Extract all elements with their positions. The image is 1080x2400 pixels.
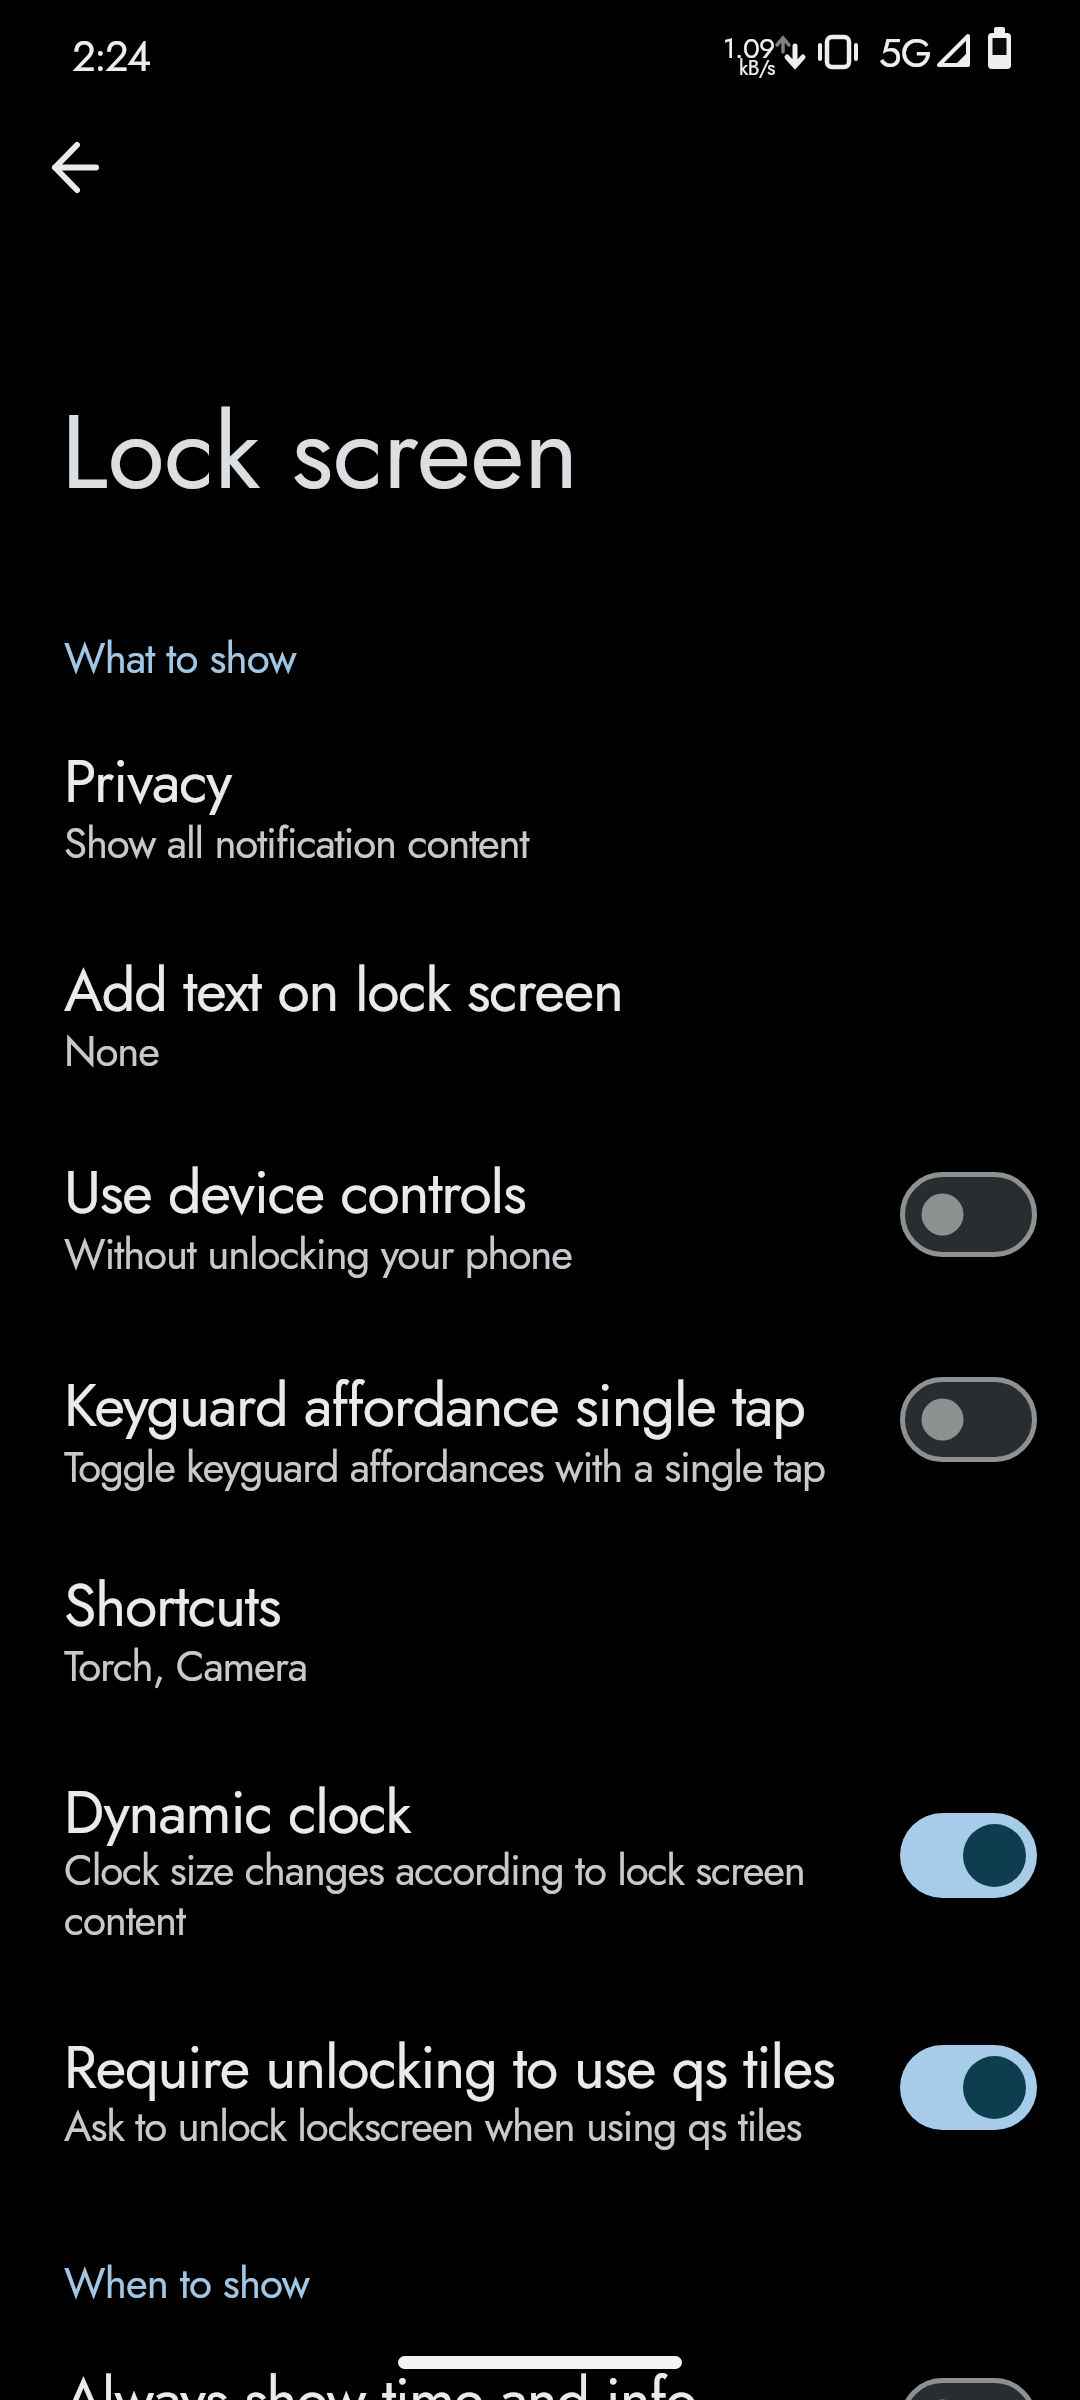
staticText: Dynamic clock	[64, 1770, 411, 1855]
staticText: Show all notification content	[64, 813, 529, 874]
button[interactable]: Require unlocking to use qs tiles	[0, 2002, 1080, 2182]
staticText: Keyguard affordance single tap	[64, 1363, 805, 1448]
staticText: Without unlocking your phone	[64, 1224, 572, 1285]
button[interactable]: Add text on lock screen	[0, 925, 1080, 1105]
staticText: kB/s	[739, 53, 776, 83]
button[interactable]: Privacy	[0, 716, 1080, 896]
staticText: Toggle keyguard affordances with a singl…	[64, 1437, 825, 1498]
staticText: 1.09	[723, 28, 775, 68]
staticText: Shortcuts	[64, 1563, 281, 1648]
button[interactable]	[900, 2045, 1037, 2130]
button[interactable]	[900, 2378, 1037, 2400]
staticText: What to show	[64, 628, 296, 689]
staticText: Always show time and info	[64, 2357, 697, 2400]
button[interactable]: Use device controls	[0, 1127, 1080, 1307]
staticText: Clock size changes according to lock scr…	[64, 1840, 805, 1901]
staticText: Add text on lock screen	[64, 948, 623, 1033]
button[interactable]: Shortcuts	[0, 1540, 1080, 1720]
staticText: Ask to unlock lockscreen when using qs t…	[64, 2096, 802, 2157]
staticText: Torch, Camera	[64, 1636, 307, 1697]
button[interactable]	[900, 1377, 1037, 1462]
button[interactable]	[30, 122, 120, 212]
staticText: Require unlocking to use qs tiles	[64, 2025, 835, 2110]
staticText: None	[64, 1021, 159, 1082]
staticText: 2:24	[72, 26, 150, 87]
staticText: Use device controls	[64, 1150, 526, 1235]
staticText: When to show	[64, 2253, 310, 2314]
staticText: Privacy	[64, 739, 231, 824]
staticText: 5G	[879, 24, 931, 82]
staticText: content	[64, 1890, 185, 1951]
button[interactable]	[900, 1813, 1037, 1898]
button[interactable]: Dynamic clock	[0, 1747, 1080, 1977]
staticText: Lock screen	[61, 377, 579, 527]
button[interactable]	[900, 1172, 1037, 1257]
button[interactable]: Keyguard affordance single tap	[0, 1340, 1080, 1520]
button[interactable]: Always show time and info	[0, 2355, 1080, 2400]
